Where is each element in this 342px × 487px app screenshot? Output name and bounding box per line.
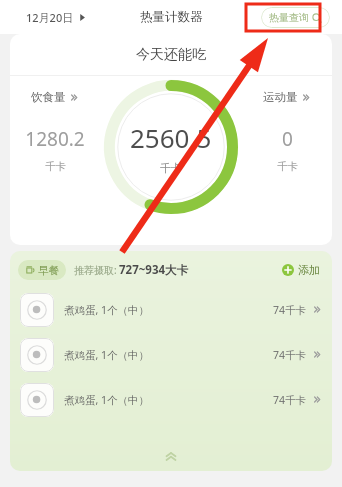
staticText: 74千卡 xyxy=(273,303,307,317)
button[interactable]: 早餐 xyxy=(18,260,66,280)
staticText: 74千卡 xyxy=(273,393,307,407)
button[interactable]: 热量查询 xyxy=(261,7,330,28)
button[interactable]: 饮食量 xyxy=(27,88,83,106)
staticText: 12月20日 xyxy=(26,10,74,25)
staticText: 74千卡 xyxy=(273,348,307,362)
staticText: 煮鸡蛋, 1个（中） xyxy=(64,393,150,407)
button[interactable]: 12月20日 xyxy=(22,7,90,28)
staticText: 1280.2 xyxy=(25,126,85,152)
button[interactable]: 添加 xyxy=(278,261,324,279)
button[interactable]: 煮鸡蛋, 1个（中） xyxy=(10,287,332,332)
staticText: 0 xyxy=(282,126,293,152)
staticText: 2560.5 xyxy=(130,120,212,155)
staticText: 热量计数器 xyxy=(140,9,203,25)
staticText: 千卡 xyxy=(277,160,298,173)
staticText: 千卡 xyxy=(160,161,182,175)
staticText: 今天还能吃 xyxy=(136,46,206,64)
staticText: 727~934大卡 xyxy=(119,262,189,278)
staticText: 千卡 xyxy=(45,160,66,173)
button[interactable]: 运动量 xyxy=(259,88,315,106)
staticText: 运动量 xyxy=(263,90,298,104)
button[interactable]: 收起 xyxy=(10,447,332,465)
button[interactable]: 煮鸡蛋, 1个（中） xyxy=(10,377,332,422)
button[interactable]: 煮鸡蛋, 1个（中） xyxy=(10,332,332,377)
staticText: 煮鸡蛋, 1个（中） xyxy=(64,303,150,317)
staticText: 热量查询 xyxy=(269,11,309,24)
staticText: 添加 xyxy=(298,263,320,277)
staticText: 早餐 xyxy=(38,264,59,277)
staticText: 饮食量 xyxy=(31,90,66,104)
staticText: 煮鸡蛋, 1个（中） xyxy=(64,348,150,362)
staticText: 推荐摄取: xyxy=(74,263,117,277)
